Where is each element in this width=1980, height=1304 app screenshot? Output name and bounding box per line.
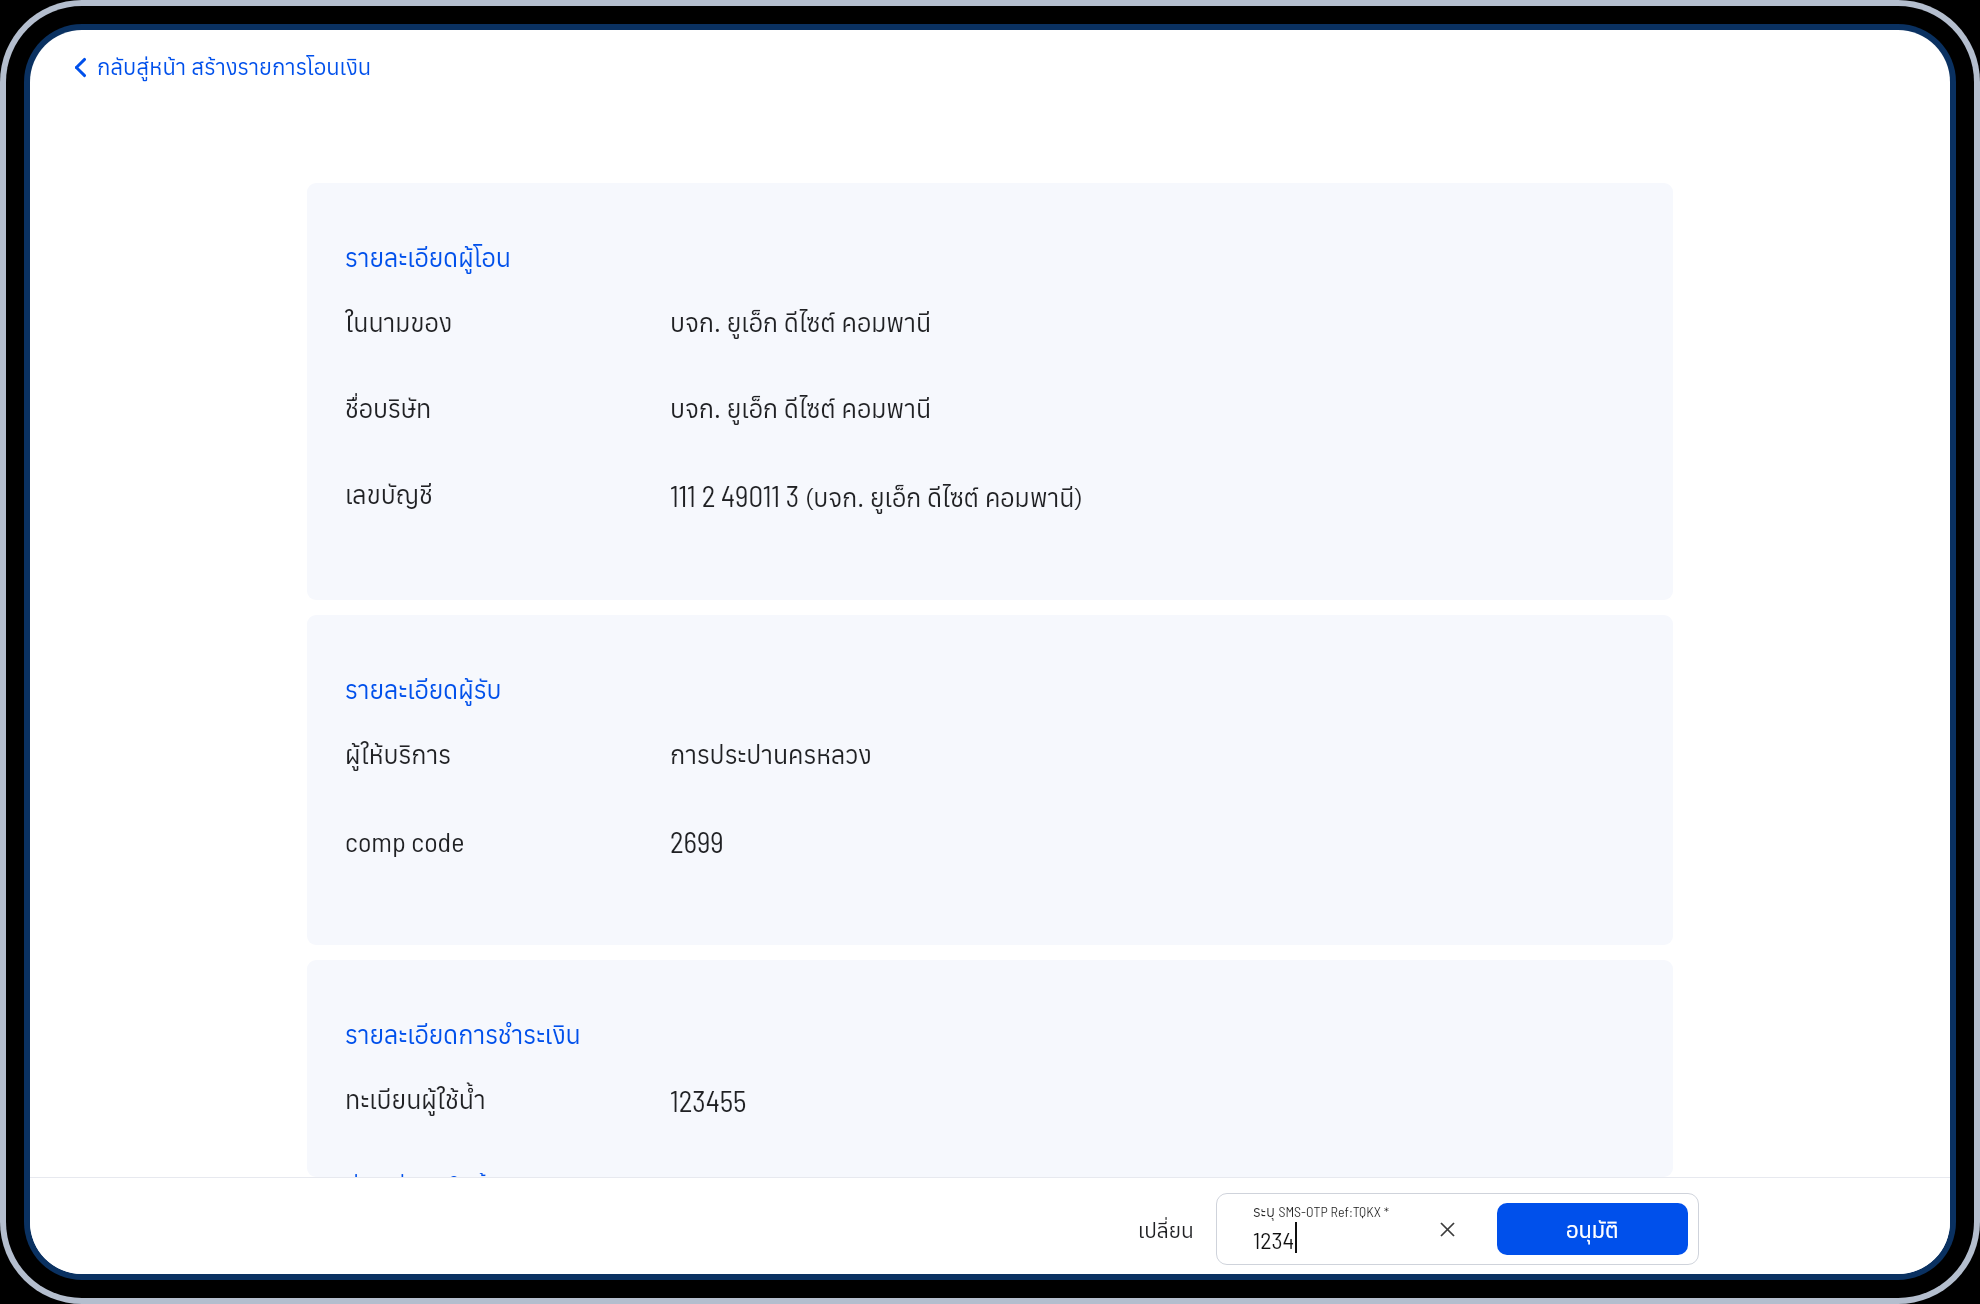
staticText: เลขบัญชี (345, 478, 670, 511)
staticText: การประปานครหลวง (670, 738, 872, 771)
staticText: ระบุ SMS-OTP Ref:TQKX * (1253, 1202, 1390, 1222)
button[interactable]: ระบุ SMS-OTP Ref:TQKX * (1216, 1193, 1425, 1265)
button[interactable]: Clear OTP (1425, 1207, 1469, 1251)
staticText: 123455 (670, 1083, 747, 1118)
staticText: บจก. ยูเอ็ก ดีไซต์ คอมพานี (670, 306, 932, 339)
staticText: กลับสู่หน้า สร้างรายการโอนเงิน (97, 52, 372, 81)
staticText: เปลี่ยน (1138, 1216, 1194, 1243)
staticText: 2699 (670, 824, 724, 859)
staticText: ชื่อ&ที่อยู่ผู้ใช้น้ำจ๋า (345, 1173, 525, 1177)
button[interactable]: กลับสู่หน้า สร้างรายการโอนเงิน (75, 39, 386, 94)
staticText: อนุมัติ (1566, 1215, 1619, 1244)
staticText: 111 2 49011 3 (บจก. ยูเอ็ก ดีไซต์ คอมพาน… (670, 478, 1083, 514)
staticText: ทะเบียนผู้ใช้น้ำ (345, 1083, 670, 1116)
staticText: 1234 (1253, 1225, 1295, 1254)
staticText: ชื่อบริษัท (345, 392, 670, 425)
button[interactable]: อนุมัติ (1497, 1203, 1688, 1255)
staticText: ผู้ให้บริการ (345, 738, 670, 771)
button[interactable]: เปลี่ยน (1130, 1208, 1202, 1251)
staticText: บจก. ยูเอ็ก ดีไซต์ คอมพานี (670, 392, 932, 425)
staticText: ในนามของ (345, 306, 670, 339)
staticText: comp code (345, 824, 670, 858)
staticText: รายละเอียดการชำระเงิน (345, 1018, 581, 1051)
staticText: รายละเอียดผู้รับ (345, 673, 502, 706)
staticText: รายละเอียดผู้โอน (345, 241, 511, 274)
